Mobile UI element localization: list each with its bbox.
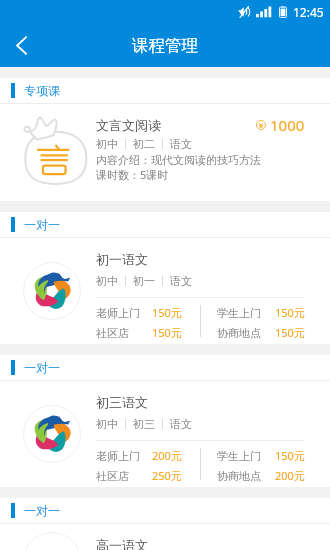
staticText: 协商地点: [217, 326, 261, 340]
staticText: 初三: [133, 417, 155, 431]
button[interactable]: Back: [0, 24, 42, 67]
staticText: 一对一: [24, 503, 60, 518]
button[interactable]: 初三语文: [0, 381, 330, 487]
staticText: 200元: [275, 468, 305, 483]
staticText: 课程管理: [132, 35, 198, 56]
staticText: 200元: [152, 448, 182, 463]
staticText: 12:45: [293, 4, 324, 20]
staticText: 社区店: [96, 326, 129, 340]
staticText: 老师上门: [96, 449, 140, 463]
staticText: 语文: [170, 417, 192, 431]
staticText: 初中: [96, 137, 118, 151]
staticText: 150元: [152, 305, 182, 320]
button[interactable]: 文言文阅读: [0, 104, 330, 201]
staticText: 内容介绍：现代文阅读的技巧方法: [96, 153, 261, 167]
staticText: 专项课: [24, 83, 60, 98]
button[interactable]: 初一语文: [0, 238, 330, 344]
staticText: 初三语文: [96, 394, 148, 410]
staticText: 语文: [170, 137, 192, 151]
staticText: 社区店: [96, 469, 129, 483]
staticText: 一对一: [24, 217, 60, 232]
staticText: 初中: [96, 417, 118, 431]
staticText: 学生上门: [217, 306, 261, 320]
staticText: 1000: [270, 115, 305, 135]
staticText: 协商地点: [217, 469, 261, 483]
staticText: 150元: [275, 325, 305, 340]
staticText: 文言文阅读: [96, 117, 161, 133]
staticText: 初一: [133, 274, 155, 288]
staticText: 老师上门: [96, 306, 140, 320]
staticText: 250元: [152, 468, 182, 483]
staticText: 150元: [275, 305, 305, 320]
staticText: 初二: [133, 137, 155, 151]
staticText: 语文: [170, 274, 192, 288]
staticText: 初一语文: [96, 251, 148, 267]
staticText: 学生上门: [217, 449, 261, 463]
staticText: 150元: [275, 448, 305, 463]
staticText: 150元: [152, 325, 182, 340]
button[interactable]: 高一语文: [0, 524, 330, 550]
staticText: 课时数：5课时: [96, 167, 169, 182]
staticText: 高一语文: [96, 537, 148, 550]
staticText: 初中: [96, 274, 118, 288]
staticText: 一对一: [24, 360, 60, 375]
